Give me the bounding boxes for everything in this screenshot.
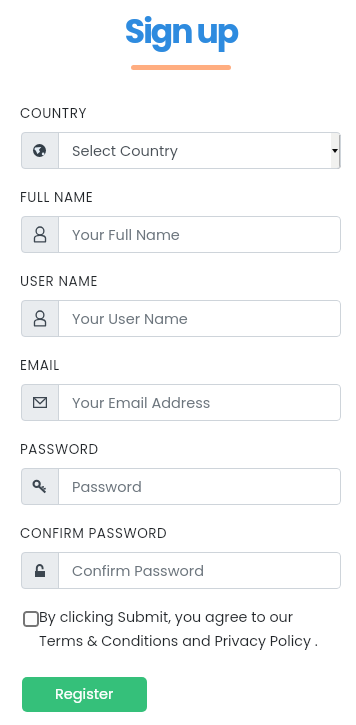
staticText: EMAIL [20, 356, 60, 375]
button[interactable]: Password [21, 468, 341, 505]
staticText: Register [55, 684, 114, 704]
staticText: FULL NAME [20, 188, 94, 207]
button[interactable]: Confirm Password [21, 552, 341, 589]
button[interactable]: Your Email Address [21, 384, 341, 421]
staticText: Confirm Password [72, 561, 205, 581]
staticText: USER NAME [20, 272, 98, 291]
staticText: PASSWORD [20, 440, 99, 459]
staticText: COUNTRY [20, 104, 87, 123]
staticText: Your Email Address [72, 393, 211, 413]
button[interactable]: Your User Name [21, 300, 341, 337]
button[interactable]: Select Country [21, 132, 341, 169]
button[interactable]: Register [22, 677, 147, 712]
button[interactable]: Accept terms and conditions [23, 611, 39, 627]
staticText: Select Country [72, 141, 178, 161]
staticText: Your Full Name [72, 225, 180, 245]
staticText: Sign up [3, 8, 356, 54]
staticText: Password [72, 477, 142, 497]
staticText: Your User Name [72, 309, 188, 329]
staticText: CONFIRM PASSWORD [20, 524, 168, 543]
button[interactable]: Your Full Name [21, 216, 341, 253]
staticText: By clicking Submit, you agree to our Ter… [39, 607, 320, 651]
